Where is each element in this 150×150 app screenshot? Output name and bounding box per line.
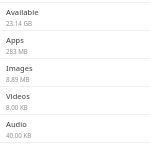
button[interactable]: Images xyxy=(0,59,150,86)
button[interactable]: Audio xyxy=(0,115,150,142)
staticText: 8.00 KB xyxy=(6,103,28,111)
staticText: Audio xyxy=(6,119,27,129)
button[interactable]: Available xyxy=(0,3,150,30)
button[interactable]: Apps xyxy=(0,31,150,58)
button[interactable]: Videos xyxy=(0,87,150,114)
staticText: 283 MB xyxy=(6,47,28,55)
staticText: 8.89 MB xyxy=(6,75,30,83)
staticText: 23.14 GB xyxy=(6,19,32,27)
staticText: 40.00 KB xyxy=(6,131,32,139)
staticText: Images xyxy=(6,63,33,73)
staticText: Available xyxy=(6,7,39,17)
staticText: Apps xyxy=(6,35,24,45)
staticText: Videos xyxy=(6,91,30,101)
